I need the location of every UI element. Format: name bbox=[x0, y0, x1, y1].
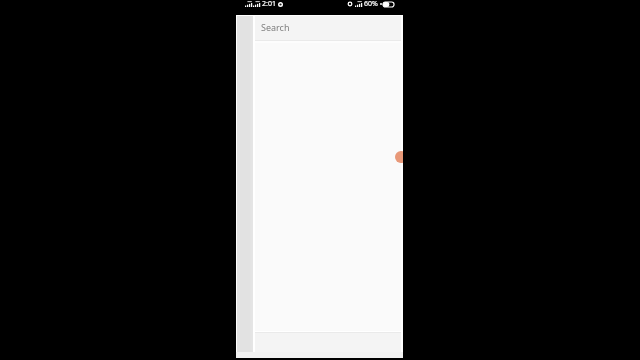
button[interactable]: Search bbox=[255, 16, 403, 40]
staticText: 2:01 bbox=[262, 0, 276, 9]
staticText: 60% bbox=[364, 0, 378, 9]
button[interactable]: Create new bbox=[395, 151, 403, 163]
staticText: Search bbox=[261, 21, 290, 33]
